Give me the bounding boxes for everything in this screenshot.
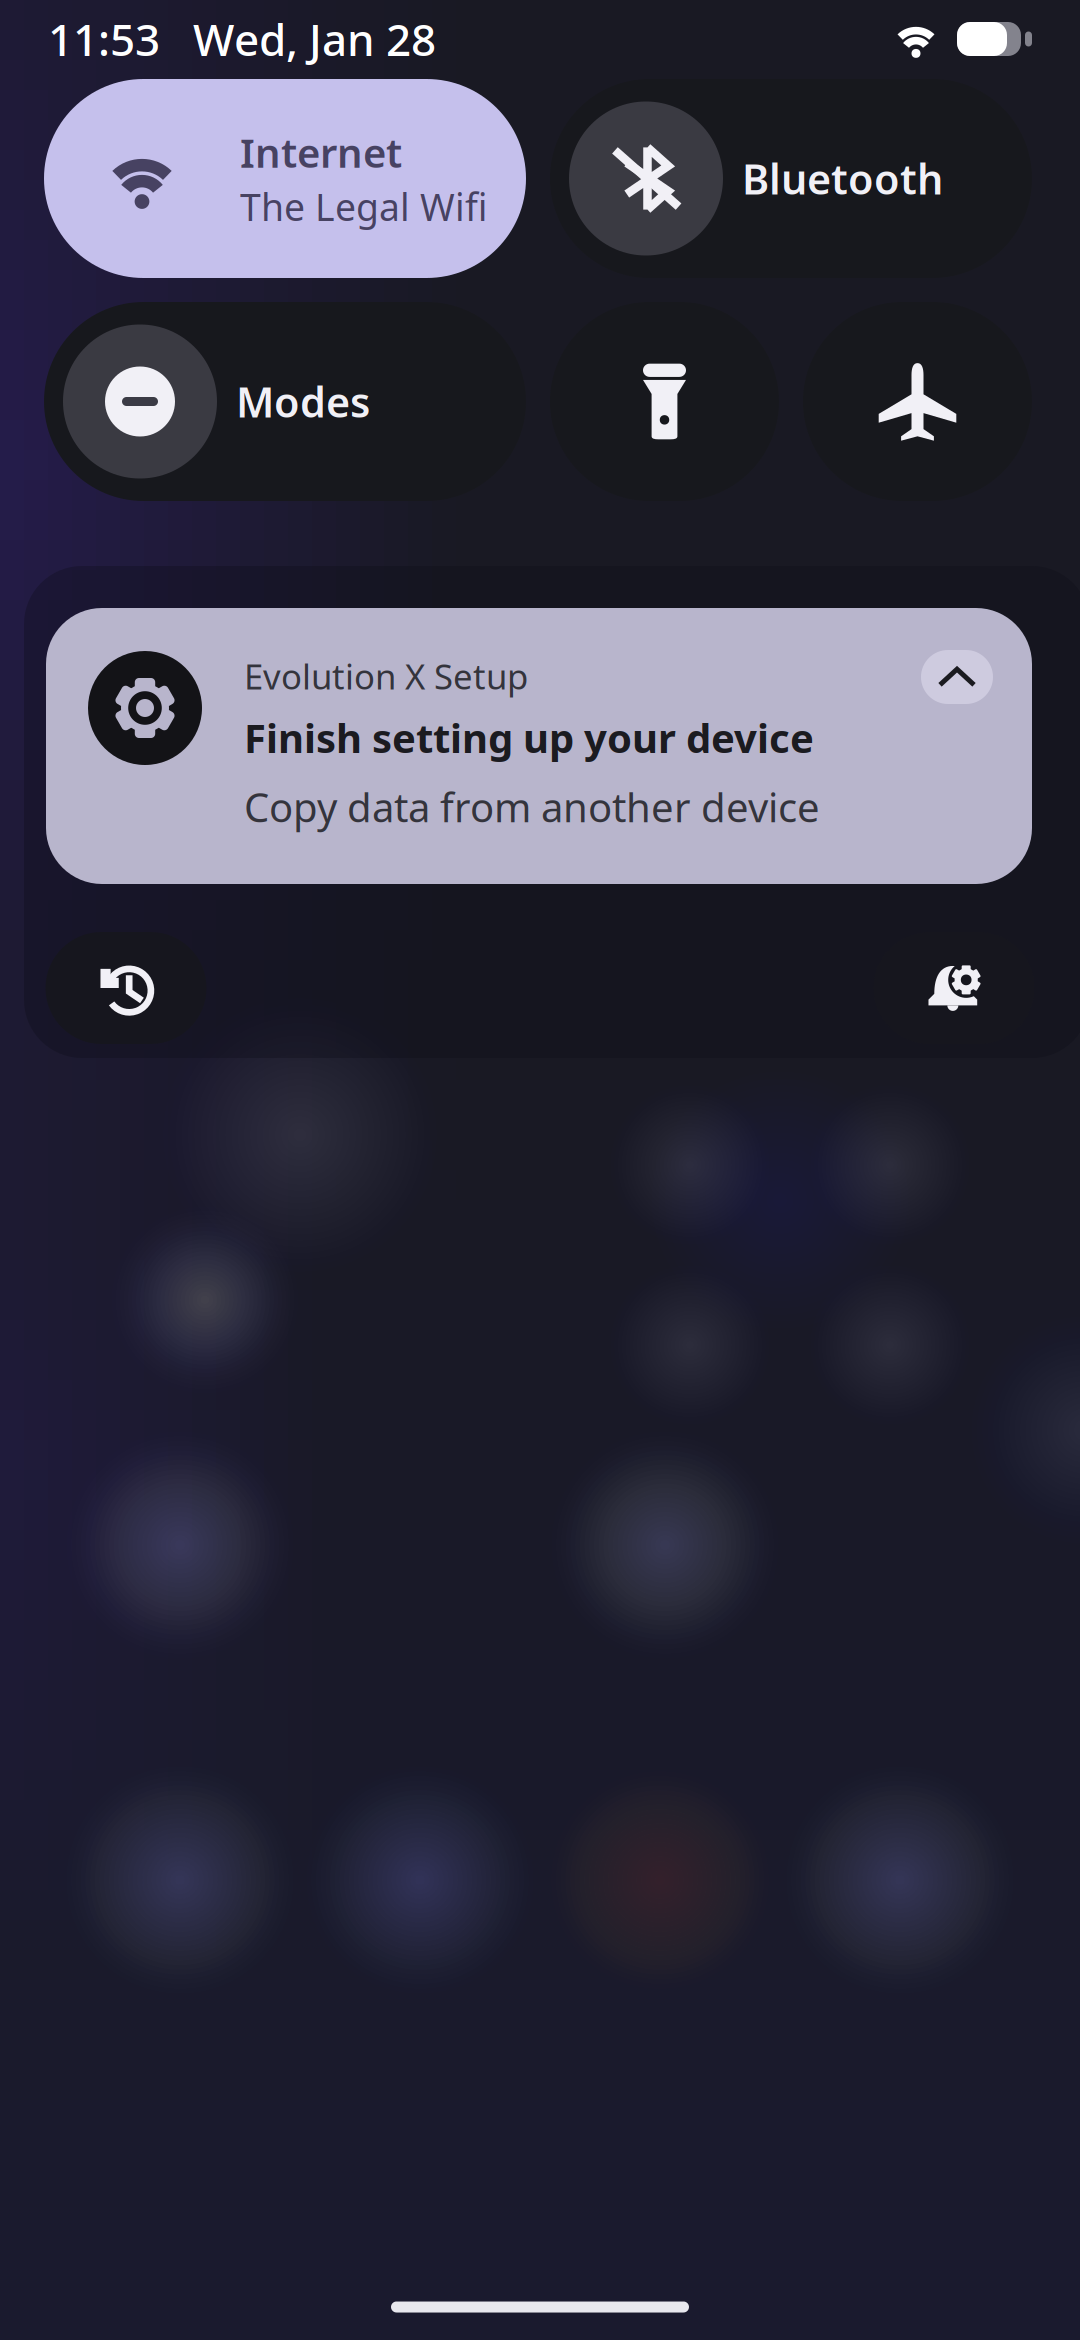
staticText: The Legal Wifi <box>240 182 487 231</box>
button[interactable]: Internet <box>44 79 526 278</box>
staticText: Evolution X Setup <box>244 653 528 699</box>
staticText: 11:53 Wed, Jan 28 <box>48 10 436 68</box>
staticText: Internet <box>240 126 402 179</box>
staticText: Bluetooth <box>742 151 943 206</box>
button[interactable]: Notification settings <box>873 932 1034 1044</box>
button[interactable]: Modes <box>44 302 526 501</box>
button[interactable]: Bluetooth <box>550 79 1032 278</box>
staticText: Modes <box>236 374 370 429</box>
button[interactable]: Notification history <box>45 932 206 1044</box>
button[interactable]: Evolution X Setup <box>46 608 1032 884</box>
button[interactable]: Airplane mode <box>803 302 1032 501</box>
button[interactable]: Collapse notification <box>921 650 993 704</box>
staticText: Finish setting up your device <box>244 711 814 764</box>
button[interactable]: Flashlight <box>550 302 779 501</box>
staticText: Copy data from another device <box>244 780 820 833</box>
